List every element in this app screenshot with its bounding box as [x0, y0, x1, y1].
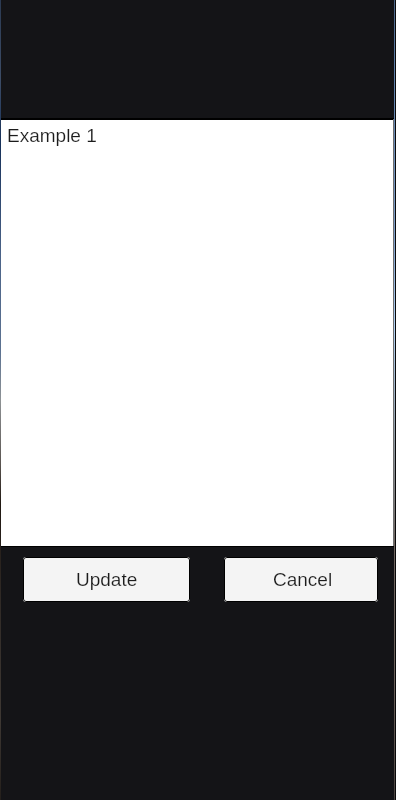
staticText: Update: [76, 569, 138, 590]
staticText: Cancel: [273, 569, 333, 590]
button[interactable]: Cancel: [224, 557, 378, 602]
staticText: Example 1: [7, 125, 97, 146]
button[interactable]: Update: [23, 557, 190, 602]
